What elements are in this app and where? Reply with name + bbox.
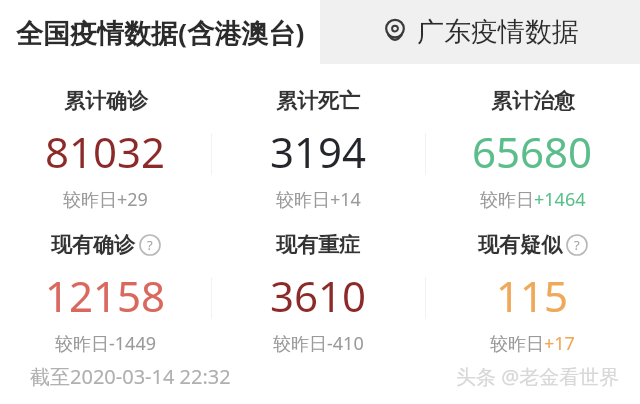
other: 定位 (382, 19, 408, 45)
staticText: 81032 (45, 123, 166, 180)
staticText: 现有确诊 (51, 232, 135, 258)
staticText: ? (574, 236, 580, 254)
other: 说明 (566, 234, 588, 256)
staticText: 较昨日+1464 (480, 187, 586, 212)
other: 说明 (139, 234, 161, 256)
staticText: 较昨日-1449 (55, 331, 156, 356)
staticText: 现有重症 (276, 232, 360, 258)
staticText: 较昨日+29 (63, 187, 148, 212)
staticText: 现有疑似 (478, 232, 562, 258)
staticText: 较昨日+17 (490, 331, 575, 356)
staticText: 全国疫情数据(含港澳台) (16, 14, 305, 51)
staticText: 65680 (472, 123, 593, 180)
staticText: 较昨日-410 (273, 331, 364, 356)
button[interactable]: 现有重症 (211, 232, 425, 356)
staticText: 3610 (270, 267, 367, 324)
staticText: ? (147, 236, 153, 254)
staticText: 头条 @老金看世界 (456, 363, 620, 390)
button[interactable]: 累计确诊 (0, 88, 211, 212)
staticText: 较昨日+14 (276, 187, 361, 212)
staticText: 累计死亡 (276, 88, 360, 114)
staticText: 累计治愈 (491, 88, 575, 114)
button[interactable]: 现有确诊 (0, 232, 211, 356)
button[interactable]: 定位 (320, 0, 640, 64)
staticText: 3194 (270, 123, 367, 180)
button[interactable]: 累计治愈 (425, 88, 640, 212)
button[interactable]: 全国疫情数据(含港澳台) (0, 0, 320, 64)
staticText: 广东疫情数据 (417, 15, 579, 49)
staticText: 12158 (45, 267, 166, 324)
staticText: 截至2020-03-14 22:32 (30, 363, 231, 390)
button[interactable]: 现有疑似 (425, 232, 640, 356)
staticText: 累计确诊 (64, 88, 148, 114)
staticText: 115 (496, 267, 569, 324)
button[interactable]: 累计死亡 (211, 88, 425, 212)
